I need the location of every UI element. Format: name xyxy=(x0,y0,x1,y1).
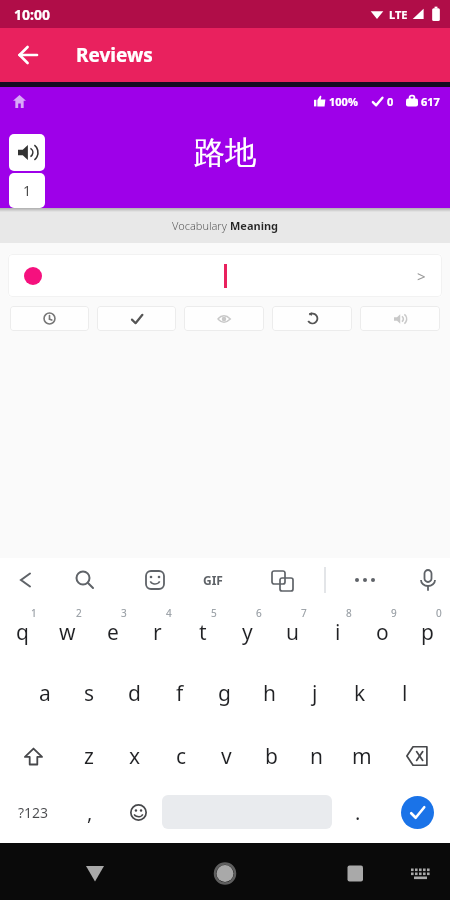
button[interactable]: s xyxy=(67,662,112,725)
staticText: r xyxy=(153,618,162,647)
staticText: 0 xyxy=(436,606,442,620)
button[interactable]: w xyxy=(45,602,90,662)
button[interactable] xyxy=(300,843,450,900)
staticText: m xyxy=(352,742,372,771)
staticText: e xyxy=(107,618,119,647)
staticText: l xyxy=(402,679,408,708)
button[interactable]: t xyxy=(180,602,225,662)
button[interactable]: . xyxy=(332,787,384,837)
staticText: 5 xyxy=(211,606,217,620)
button[interactable]: x xyxy=(112,725,158,787)
staticText: Meaning xyxy=(230,218,279,233)
staticText: b xyxy=(265,742,278,771)
staticText: 617 xyxy=(421,94,440,109)
staticText: GIF xyxy=(203,572,223,588)
button[interactable]: p xyxy=(405,602,450,662)
staticText: d xyxy=(128,679,141,708)
button[interactable]: l xyxy=(382,662,427,725)
staticText: t xyxy=(199,618,207,647)
button[interactable]: ?123 xyxy=(0,787,66,837)
button[interactable]: q xyxy=(0,602,45,662)
staticText: 2 xyxy=(76,606,82,620)
button[interactable]: z xyxy=(66,725,112,787)
button[interactable]: , xyxy=(66,787,114,837)
staticText: ?123 xyxy=(18,803,49,822)
staticText: n xyxy=(310,742,323,771)
button[interactable]: > xyxy=(8,254,442,297)
staticText: w xyxy=(59,618,76,647)
staticText: 4 xyxy=(166,606,172,620)
staticText: . xyxy=(355,799,361,826)
button[interactable]: d xyxy=(112,662,157,725)
staticText: > xyxy=(417,266,426,286)
staticText: 1 xyxy=(23,181,32,200)
button[interactable] xyxy=(0,843,150,900)
staticText: v xyxy=(221,742,232,771)
button[interactable] xyxy=(9,134,45,171)
staticText: 1 xyxy=(31,606,37,620)
staticText: o xyxy=(376,618,389,647)
button[interactable] xyxy=(0,28,56,82)
staticText: 7 xyxy=(301,606,307,620)
staticText: , xyxy=(87,799,93,826)
staticText: c xyxy=(176,742,187,771)
button[interactable]: m xyxy=(339,725,384,787)
staticText: LTE xyxy=(389,7,408,22)
staticText: x xyxy=(129,742,141,771)
staticText: Reviews xyxy=(76,42,153,68)
staticText: p xyxy=(421,618,434,647)
button[interactable]: y xyxy=(225,602,270,662)
staticText: k xyxy=(354,679,366,708)
staticText: 6 xyxy=(256,606,262,620)
button[interactable]: i xyxy=(315,602,360,662)
staticText: s xyxy=(84,679,95,708)
button[interactable]: v xyxy=(204,725,249,787)
staticText: h xyxy=(263,679,276,708)
staticText: g xyxy=(218,679,231,708)
button[interactable]: u xyxy=(270,602,315,662)
staticText: f xyxy=(176,679,184,708)
button[interactable] xyxy=(10,306,89,331)
staticText: 10:00 xyxy=(14,5,50,24)
button[interactable] xyxy=(0,725,66,787)
button[interactable]: o xyxy=(360,602,405,662)
button[interactable] xyxy=(184,306,264,331)
staticText: z xyxy=(84,742,94,771)
button[interactable]: r xyxy=(135,602,180,662)
staticText: 8 xyxy=(346,606,352,620)
button[interactable]: k xyxy=(337,662,382,725)
button[interactable]: f xyxy=(157,662,202,725)
staticText: j xyxy=(312,679,318,708)
button[interactable]: n xyxy=(294,725,339,787)
staticText: 9 xyxy=(391,606,397,620)
button[interactable]: e xyxy=(90,602,135,662)
staticText: 3 xyxy=(121,606,127,620)
button[interactable]: c xyxy=(158,725,204,787)
staticText: 0 xyxy=(387,94,394,109)
staticText: u xyxy=(286,618,299,647)
staticText: 路地 xyxy=(194,133,256,172)
button[interactable] xyxy=(97,306,176,331)
staticText: i xyxy=(335,618,341,647)
button[interactable]: 1 xyxy=(9,173,45,208)
staticText: 100% xyxy=(329,94,358,109)
staticText: a xyxy=(39,679,51,708)
button[interactable] xyxy=(150,843,300,900)
button[interactable] xyxy=(272,306,352,331)
staticText: Vocabulary xyxy=(172,218,230,233)
button[interactable] xyxy=(384,725,450,787)
button[interactable]: h xyxy=(247,662,292,725)
button[interactable]: b xyxy=(249,725,294,787)
button[interactable] xyxy=(384,787,450,837)
button[interactable]: j xyxy=(292,662,337,725)
button[interactable] xyxy=(114,787,162,837)
staticText: q xyxy=(16,618,29,647)
staticText: y xyxy=(242,618,253,647)
button[interactable] xyxy=(360,306,440,331)
button[interactable]: a xyxy=(23,662,67,725)
button[interactable]: g xyxy=(202,662,247,725)
